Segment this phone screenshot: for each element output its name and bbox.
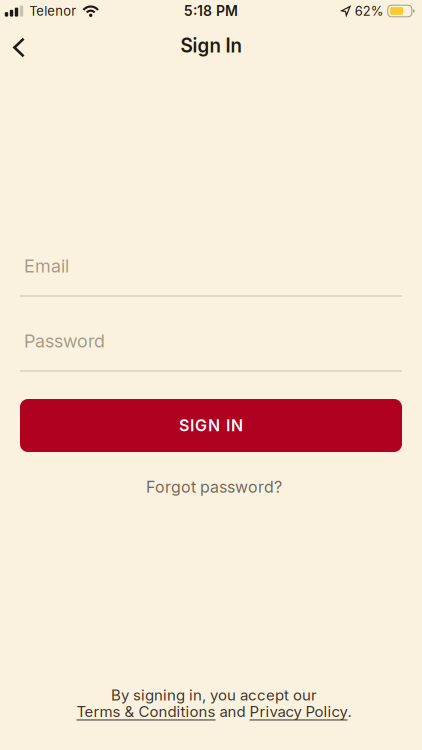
staticText: Sign In — [180, 34, 241, 57]
button[interactable]: Back — [2, 29, 36, 65]
button[interactable]: Password — [24, 330, 402, 352]
staticText: Email — [24, 255, 69, 277]
button[interactable]: Terms & Conditions and Privacy Policy — [76, 703, 351, 720]
button[interactable]: Email — [24, 255, 402, 277]
staticText: 62% — [355, 3, 384, 19]
staticText: S I G N I N — [179, 416, 243, 435]
staticText: 5:18 PM — [184, 3, 238, 19]
staticText: Forgot password? — [146, 478, 282, 496]
staticText: By signing in, you accept our — [111, 686, 317, 704]
staticText: Telenor — [29, 3, 76, 19]
button[interactable]: Forgot password? — [146, 478, 282, 496]
staticText: Terms & Conditions and Privacy Policy. — [76, 703, 351, 720]
staticText: Password — [24, 330, 105, 352]
button[interactable]: S I G N I N — [20, 399, 402, 452]
